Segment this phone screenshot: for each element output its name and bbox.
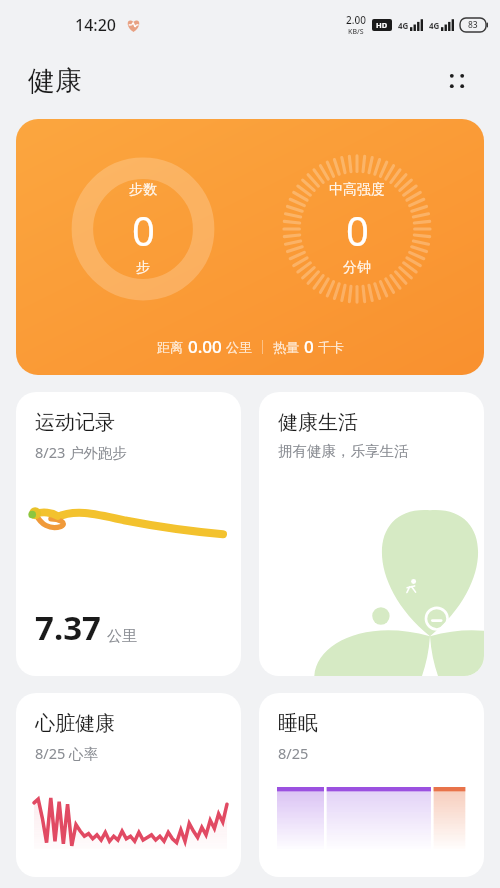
staticText: HD — [376, 20, 388, 30]
staticText: 0 — [304, 335, 314, 358]
button[interactable]: 心脏健康 — [16, 693, 241, 877]
staticText: 步数 — [129, 181, 157, 199]
button[interactable]: 步数 — [16, 119, 484, 375]
button[interactable]: More options — [440, 64, 474, 98]
staticText: 公里 — [226, 339, 252, 355]
staticText: 分钟 — [343, 259, 371, 277]
staticText: 心脏健康 — [35, 711, 115, 736]
staticText: 睡眠 — [278, 711, 318, 736]
staticText: 4G — [398, 20, 409, 31]
staticText: 距离 — [157, 339, 183, 355]
staticText: 7.37 — [35, 605, 101, 650]
staticText: 运动记录 — [35, 410, 115, 435]
staticText: 步 — [136, 259, 150, 277]
staticText: 健康生活 — [278, 410, 358, 435]
staticText: 公里 — [107, 627, 137, 646]
staticText: 4G — [429, 20, 440, 31]
button[interactable]: 睡眠 — [259, 693, 484, 877]
staticText: 中高强度 — [329, 181, 385, 199]
staticText: 14:20 — [75, 14, 116, 36]
staticText: 千卡 — [318, 339, 344, 355]
staticText: 0.00 — [188, 335, 222, 358]
staticText: 83 — [468, 19, 478, 31]
staticText: 0 — [346, 203, 369, 257]
staticText: 8/23 户外跑步 — [35, 442, 128, 462]
staticText: 拥有健康，乐享生活 — [278, 442, 409, 460]
button[interactable]: 健康生活 — [259, 392, 484, 676]
staticText: 8/25 心率 — [35, 743, 99, 763]
staticText: 健康 — [28, 64, 82, 98]
button[interactable]: 运动记录 — [16, 392, 241, 676]
staticText: 热量 — [273, 339, 299, 355]
staticText: 8/25 — [278, 743, 309, 763]
staticText: KB/S — [348, 27, 364, 37]
staticText: 2.00 — [346, 13, 366, 27]
staticText: 0 — [132, 203, 155, 257]
